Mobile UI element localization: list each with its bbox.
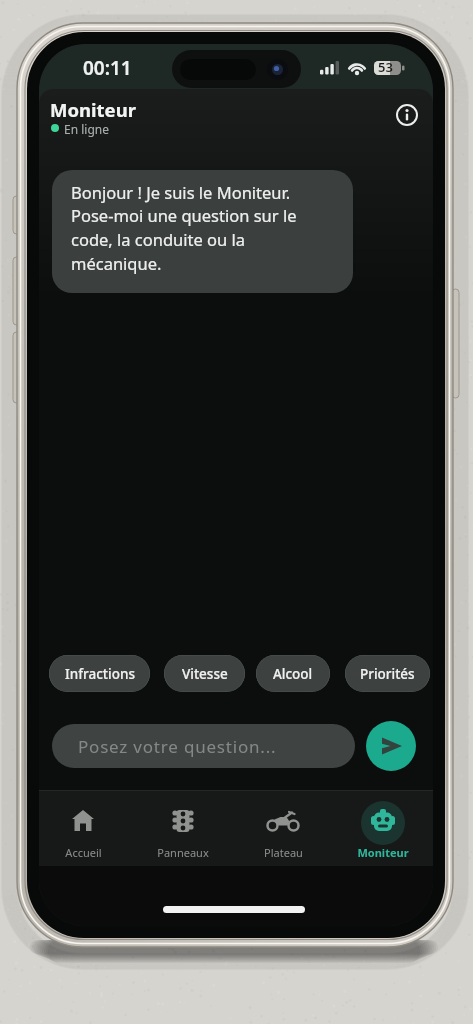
staticText: Vitesse bbox=[182, 665, 228, 683]
staticText: Accueil bbox=[65, 845, 102, 860]
button[interactable]: Infractions bbox=[49, 655, 150, 692]
button[interactable]: Vitesse bbox=[164, 655, 245, 692]
staticText: Bonjour ! Je suis le Moniteur. Pose-moi … bbox=[71, 181, 297, 275]
staticText: Priorités bbox=[360, 665, 415, 683]
button[interactable]: Alcool bbox=[256, 655, 330, 692]
button[interactable]: Posez votre question... bbox=[52, 724, 355, 768]
staticText: Plateau bbox=[264, 845, 303, 860]
button[interactable] bbox=[391, 99, 423, 131]
staticText: Infractions bbox=[65, 665, 135, 683]
staticText: Moniteur bbox=[357, 845, 409, 860]
staticText: 00:11 bbox=[83, 55, 132, 81]
staticText: Panneaux bbox=[157, 845, 209, 860]
button[interactable]: Priorités bbox=[345, 655, 430, 692]
staticText: Alcool bbox=[273, 665, 313, 683]
button[interactable]: Accueil bbox=[39, 794, 129, 864]
button[interactable]: Panneaux bbox=[137, 794, 229, 864]
staticText: Moniteur bbox=[50, 97, 136, 122]
button[interactable]: Plateau bbox=[237, 794, 329, 864]
staticText: En ligne bbox=[64, 121, 109, 137]
staticText: 53 bbox=[378, 58, 393, 76]
staticText: Posez votre question... bbox=[78, 735, 277, 758]
button[interactable] bbox=[366, 721, 416, 771]
button[interactable]: Moniteur bbox=[337, 794, 429, 864]
